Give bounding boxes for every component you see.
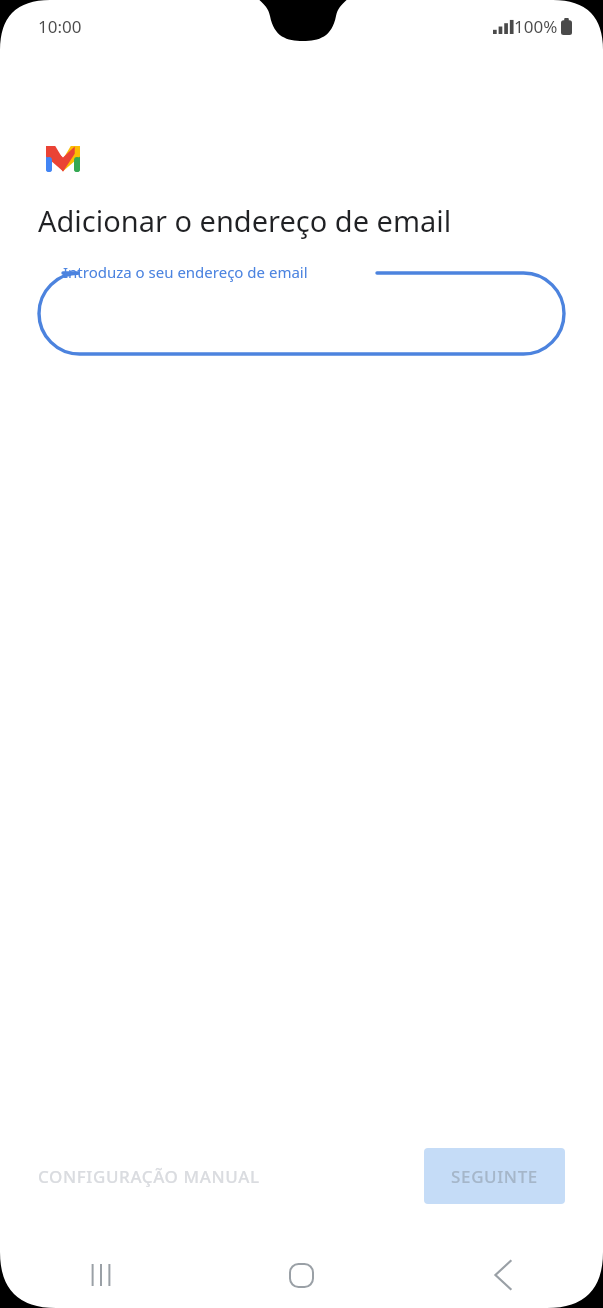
staticText: SEGUINTE	[451, 1165, 538, 1188]
staticText: 10:00	[38, 15, 82, 38]
button[interactable]: Home	[201, 1242, 402, 1308]
button[interactable]: CONFIGURAÇÃO MANUAL	[0, 1153, 272, 1200]
button[interactable]: Recent apps	[0, 1242, 201, 1308]
button[interactable]: Introduza o seu endereço de email	[39, 262, 564, 354]
button[interactable]: SEGUINTE	[424, 1148, 565, 1204]
button[interactable]: Back	[402, 1242, 603, 1308]
staticText: 100%	[514, 15, 558, 38]
staticText: CONFIGURAÇÃO MANUAL	[38, 1165, 260, 1188]
staticText: Introduza o seu endereço de email	[63, 262, 308, 282]
staticText: Adicionar o endereço de email	[38, 201, 452, 240]
